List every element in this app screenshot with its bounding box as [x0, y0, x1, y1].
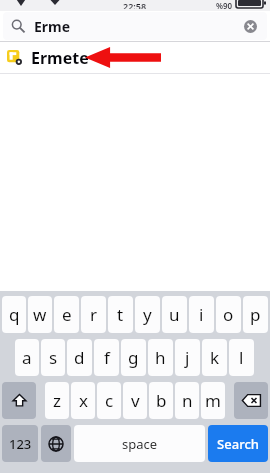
staticText: t	[117, 303, 124, 326]
staticText: n	[182, 389, 193, 412]
staticText: Erme	[34, 17, 71, 36]
staticText: h	[155, 346, 166, 369]
staticText: l	[239, 346, 244, 369]
staticText: a	[22, 346, 32, 369]
staticText: s	[49, 346, 58, 369]
button[interactable]: q	[2, 296, 26, 333]
staticText: y	[143, 303, 152, 326]
staticText: e	[62, 303, 72, 326]
staticText: i	[199, 303, 204, 326]
staticText: g	[128, 346, 139, 369]
staticText: f	[104, 346, 110, 369]
button[interactable]: n	[175, 382, 199, 419]
button[interactable]: s	[41, 339, 65, 376]
staticText: Ermete	[31, 47, 89, 69]
button[interactable]: r	[81, 296, 106, 333]
button[interactable]: space	[74, 425, 205, 462]
staticText: d	[74, 346, 85, 369]
staticText: k	[210, 346, 220, 369]
staticText: r	[90, 303, 98, 326]
staticText: m	[205, 389, 221, 412]
staticText: q	[9, 303, 20, 326]
button[interactable]: l	[229, 339, 254, 376]
button[interactable]: f	[94, 339, 119, 376]
staticText: 22:58	[123, 0, 147, 9]
button[interactable]: k	[202, 339, 227, 376]
staticText: 123	[9, 435, 32, 453]
button[interactable]: m	[201, 382, 225, 419]
staticText: b	[156, 389, 167, 412]
button[interactable]: j	[175, 339, 200, 376]
staticText: x	[79, 389, 88, 412]
button[interactable]: z	[45, 382, 69, 419]
button[interactable]: x	[71, 382, 95, 419]
button[interactable]: o	[216, 296, 241, 333]
button[interactable]: Shift	[2, 382, 36, 419]
staticText: o	[223, 303, 234, 326]
button[interactable]: i	[189, 296, 214, 333]
button[interactable]: h	[148, 339, 173, 376]
staticText: v	[131, 389, 140, 412]
staticText: w	[33, 303, 47, 326]
button[interactable]: t	[108, 296, 133, 333]
button[interactable]: u	[162, 296, 187, 333]
button[interactable]: p	[243, 296, 268, 333]
button[interactable]: g	[121, 339, 146, 376]
button[interactable]: Switch keyboard language	[41, 425, 71, 462]
button[interactable]: y	[135, 296, 160, 333]
button[interactable]: 123	[2, 425, 38, 462]
staticText: z	[53, 389, 61, 412]
button[interactable]: w	[28, 296, 52, 333]
button[interactable]: b	[149, 382, 173, 419]
staticText: c	[105, 389, 114, 412]
button[interactable]: c	[97, 382, 121, 419]
staticText: space	[122, 435, 158, 453]
button[interactable]: Erme	[3, 12, 267, 40]
staticText: Search	[217, 435, 259, 453]
button[interactable]: Ermete	[0, 42, 270, 73]
button[interactable]: v	[123, 382, 147, 419]
button[interactable]: Backspace	[234, 382, 268, 419]
staticText: j	[185, 346, 190, 369]
button[interactable]: e	[54, 296, 79, 333]
staticText: %90	[216, 0, 233, 9]
button[interactable]: d	[67, 339, 92, 376]
button[interactable]: Clear search	[241, 17, 259, 35]
staticText: u	[169, 303, 180, 326]
button[interactable]: a	[15, 339, 39, 376]
staticText: p	[250, 303, 261, 326]
button[interactable]: Search	[208, 425, 268, 462]
